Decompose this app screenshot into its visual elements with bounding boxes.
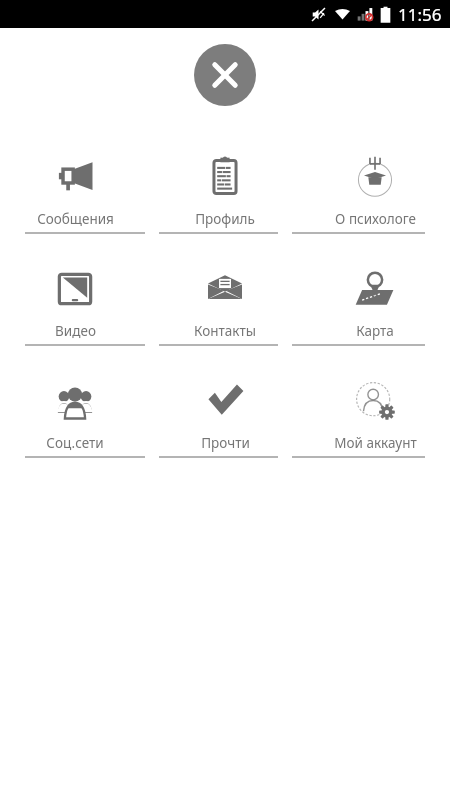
- button[interactable]: Close: [194, 44, 256, 106]
- staticText: Мой аккаунт: [334, 434, 417, 452]
- button[interactable]: Read: [150, 370, 300, 456]
- staticText: Сообщения: [37, 210, 114, 228]
- button[interactable]: My account: [300, 370, 450, 456]
- button[interactable]: Social networks: [0, 370, 150, 456]
- staticText: Соц.сети: [46, 434, 104, 452]
- button[interactable]: Map: [300, 258, 450, 344]
- button[interactable]: Messages: [0, 146, 150, 232]
- button[interactable]: Video: [0, 258, 150, 344]
- button[interactable]: About psychologist: [300, 146, 450, 232]
- staticText: О психологе: [335, 210, 416, 228]
- staticText: Прочти: [201, 434, 250, 452]
- staticText: 11:56: [398, 3, 442, 26]
- staticText: Контакты: [194, 322, 256, 340]
- button[interactable]: Profile: [150, 146, 300, 232]
- button[interactable]: Contacts: [150, 258, 300, 344]
- staticText: Профиль: [195, 210, 255, 228]
- staticText: Карта: [356, 322, 394, 340]
- staticText: Видео: [55, 322, 96, 340]
